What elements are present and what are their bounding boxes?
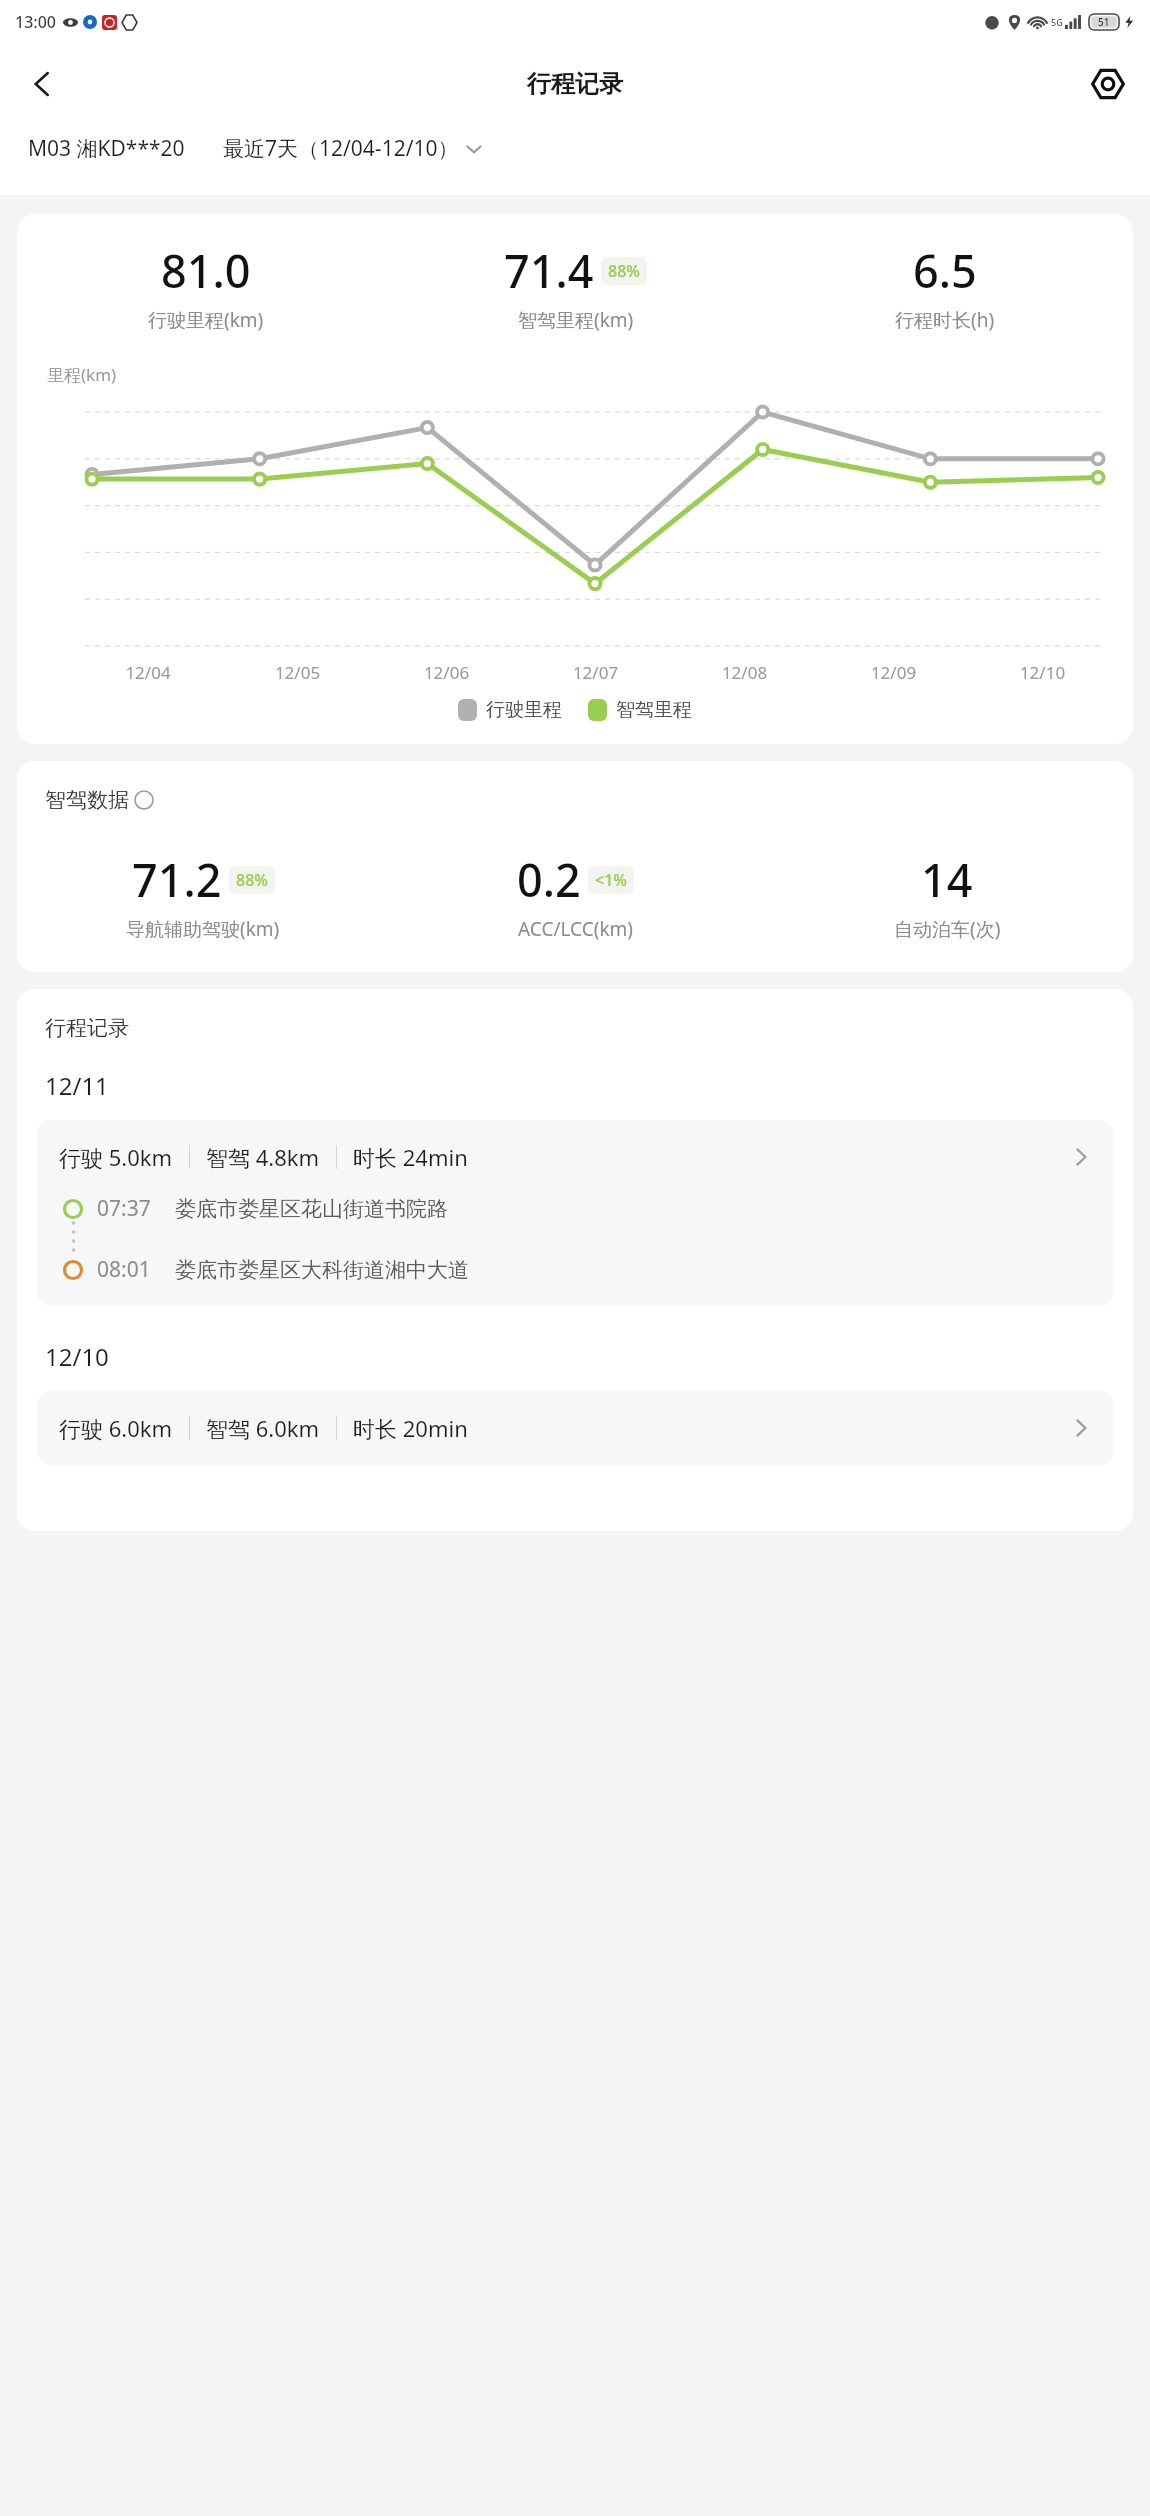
staticText: 最近7天（12/04-12/10） bbox=[223, 134, 459, 163]
button[interactable]: 行驶 5.0km bbox=[37, 1120, 1113, 1194]
staticText: 12/10 bbox=[45, 1340, 109, 1373]
staticText: 71.2 bbox=[132, 849, 222, 910]
staticText: 行程记录 bbox=[45, 1015, 129, 1041]
staticText: 12/10 bbox=[968, 661, 1117, 684]
staticText: 里程(km) bbox=[47, 363, 117, 386]
staticText: 6.5 bbox=[913, 240, 977, 301]
staticText: 88% bbox=[608, 260, 640, 282]
staticText: 12/06 bbox=[372, 661, 521, 684]
staticText: 12/09 bbox=[819, 661, 968, 684]
staticText: 行驶 6.0km bbox=[59, 1413, 173, 1443]
staticText: 12/04 bbox=[73, 661, 223, 684]
staticText: 81.0 bbox=[161, 240, 251, 301]
staticText: 行驶 5.0km bbox=[59, 1142, 173, 1172]
staticText: 71.4 bbox=[504, 240, 594, 301]
staticText: ACC/LCC(km) bbox=[518, 916, 633, 942]
button[interactable]: Settings bbox=[1080, 56, 1136, 112]
staticText: 娄底市娄星区大科街道湘中大道 bbox=[175, 1257, 469, 1283]
staticText: 12/11 bbox=[45, 1069, 109, 1102]
staticText: 88% bbox=[236, 869, 268, 891]
staticText: 智驾 6.0km bbox=[206, 1413, 320, 1443]
staticText: 自动泊车(次) bbox=[894, 916, 1001, 942]
staticText: 08:01 bbox=[97, 1255, 151, 1284]
staticText: 行程时长(h) bbox=[895, 307, 995, 333]
staticText: 14 bbox=[921, 849, 973, 910]
staticText: 0.2 bbox=[517, 849, 581, 910]
staticText: 行驶里程(km) bbox=[148, 307, 264, 333]
staticText: M03 湘KD***20 bbox=[28, 134, 185, 163]
staticText: 娄底市娄星区花山街道书院路 bbox=[175, 1196, 448, 1222]
staticText: 07:37 bbox=[97, 1194, 151, 1223]
staticText: 行程记录 bbox=[527, 69, 623, 99]
staticText: 12/08 bbox=[670, 661, 819, 684]
staticText: <1% bbox=[595, 869, 627, 891]
staticText: 行驶里程 bbox=[486, 698, 562, 722]
button[interactable]: M03 湘KD***20 bbox=[28, 130, 185, 167]
staticText: 51 bbox=[1098, 15, 1110, 29]
staticText: 时长 20min bbox=[353, 1413, 468, 1443]
staticText: 5G bbox=[1051, 16, 1063, 28]
staticText: 13:00 bbox=[15, 11, 56, 33]
button[interactable]: 最近7天（12/04-12/10） bbox=[223, 130, 1128, 167]
button[interactable]: Back bbox=[14, 56, 70, 112]
staticText: 智驾数据 bbox=[45, 787, 129, 813]
staticText: 导航辅助驾驶(km) bbox=[126, 916, 280, 942]
staticText: 12/05 bbox=[223, 661, 372, 684]
staticText: 智驾里程(km) bbox=[518, 307, 634, 333]
staticText: 12/07 bbox=[521, 661, 670, 684]
button[interactable]: 行驶 6.0km bbox=[37, 1391, 1113, 1465]
staticText: 智驾里程 bbox=[616, 698, 692, 722]
staticText: 智驾 4.8km bbox=[206, 1142, 320, 1172]
button[interactable]: 智驾数据 bbox=[45, 787, 154, 813]
staticText: 时长 24min bbox=[353, 1142, 468, 1172]
